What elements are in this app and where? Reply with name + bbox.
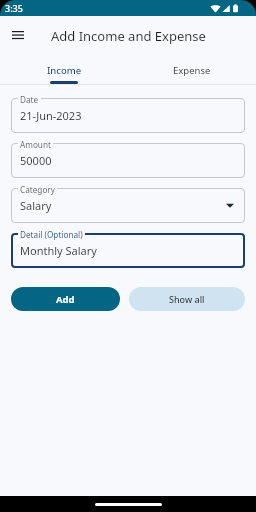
button[interactable]: Open navigation menu xyxy=(6,23,30,47)
staticText: Detail (Optional) xyxy=(20,229,83,240)
button[interactable]: Monthly Salary xyxy=(11,233,245,268)
staticText: 3:35 xyxy=(5,2,23,14)
staticText: Show all xyxy=(169,293,205,305)
staticText: 50000 xyxy=(20,153,52,168)
staticText: Monthly Salary xyxy=(20,243,97,258)
staticText: Amount xyxy=(20,139,51,150)
button[interactable]: 21-Jun-2023 xyxy=(11,98,245,133)
staticText: Add xyxy=(56,293,75,306)
button[interactable]: 50000 xyxy=(11,143,245,178)
staticText: Expense xyxy=(173,64,211,77)
staticText: 21-Jun-2023 xyxy=(20,108,82,123)
staticText: Income xyxy=(47,64,82,77)
button[interactable]: Show all xyxy=(129,287,245,311)
button[interactable]: Income xyxy=(0,56,128,86)
button[interactable]: Expense xyxy=(128,56,256,86)
staticText: Salary xyxy=(20,198,52,213)
staticText: Date xyxy=(20,94,39,105)
button[interactable]: Add xyxy=(11,287,120,311)
staticText: Category xyxy=(20,184,55,195)
other: Home gesture bar xyxy=(95,503,162,506)
staticText: Add Income and Expense xyxy=(51,27,206,45)
button[interactable]: Salary xyxy=(11,188,245,223)
